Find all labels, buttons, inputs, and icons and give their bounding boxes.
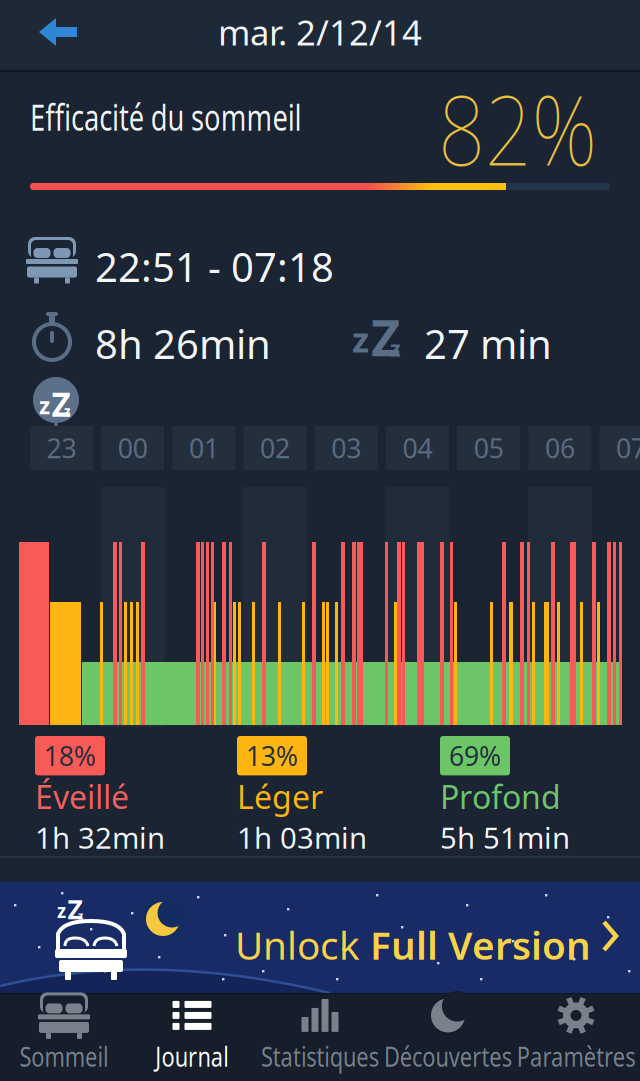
staticText: 13% — [246, 738, 298, 773]
staticText: 07 — [616, 430, 640, 466]
staticText: 5h 51min — [440, 818, 570, 857]
button[interactable]: Paramètres — [512, 995, 640, 1079]
staticText: 03 — [331, 430, 361, 466]
staticText: 23 — [46, 430, 76, 466]
staticText: Unlock — [235, 919, 370, 970]
staticText: 8h 26min — [95, 317, 271, 370]
staticText: z — [78, 908, 83, 922]
staticText: 02 — [260, 430, 290, 466]
button[interactable]: Découvertes — [384, 995, 512, 1079]
staticText: Statistiques — [244, 1037, 395, 1075]
staticText: z — [57, 898, 66, 923]
staticText: z — [352, 316, 369, 362]
staticText: 27 min — [424, 317, 552, 370]
staticText: mar. 2/12/14 — [218, 9, 422, 55]
button[interactable]: Journal — [128, 995, 256, 1079]
staticText: Journal — [145, 1037, 239, 1075]
staticText: Éveillé — [35, 775, 129, 818]
staticText: Full Version — [370, 919, 591, 970]
staticText: 1h 32min — [35, 818, 165, 857]
staticText: Léger — [237, 775, 323, 818]
button[interactable]: Statistiques — [256, 995, 384, 1079]
staticText: Z — [51, 382, 70, 426]
staticText: 18% — [44, 738, 96, 773]
staticText: 82% — [410, 63, 597, 192]
staticText: 04 — [402, 430, 432, 466]
staticText: 69% — [449, 738, 501, 773]
staticText: Z — [67, 891, 82, 927]
staticText: 06 — [545, 430, 575, 466]
staticText: 00 — [118, 430, 148, 466]
staticText: z — [390, 334, 401, 362]
button[interactable]: Back — [0, 0, 103, 70]
staticText: 22:51 - 07:18 — [95, 240, 334, 293]
button[interactable]: Unlock Full Version — [0, 882, 640, 993]
staticText: z — [39, 390, 50, 420]
staticText: z — [64, 402, 71, 420]
staticText: 01 — [189, 430, 219, 466]
staticText: Efficacité du sommeil — [30, 93, 387, 141]
button[interactable]: Sommeil — [0, 995, 128, 1079]
staticText: 05 — [474, 430, 504, 466]
staticText: Sommeil — [7, 1037, 121, 1075]
staticText: 1h 03min — [237, 818, 367, 857]
staticText: Z — [371, 303, 400, 370]
staticText: Profond — [440, 775, 561, 818]
staticText: Découvertes — [366, 1037, 530, 1075]
staticText: Paramètres — [500, 1037, 640, 1075]
